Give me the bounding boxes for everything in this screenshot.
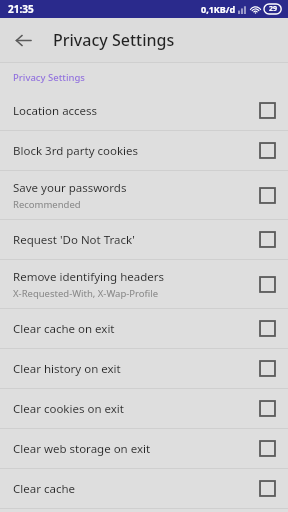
staticText: Remove identifying headers: [13, 269, 165, 285]
staticText: Clear history on exit: [13, 361, 121, 377]
button[interactable]: Remove identifying headers: [0, 260, 288, 308]
staticText: Request 'Do Not Track': [13, 232, 135, 248]
staticText: Clear cookies on exit: [13, 401, 124, 417]
staticText: Recommended: [13, 198, 81, 211]
staticText: Clear cache: [13, 481, 75, 497]
button[interactable]: Save your passwords: [0, 171, 288, 219]
staticText: Block 3rd party cookies: [13, 143, 139, 159]
staticText: X-Requested-With, X-Wap-Profile: [13, 287, 159, 300]
button[interactable]: Clear cache on exit: [0, 309, 288, 348]
button[interactable]: Clear cache: [0, 469, 288, 508]
staticText: Clear web storage on exit: [13, 441, 151, 457]
button[interactable]: Back: [10, 27, 36, 53]
staticText: 21:35: [8, 2, 34, 16]
staticText: Privacy Settings: [53, 29, 175, 51]
staticText: Save your passwords: [13, 180, 127, 196]
button[interactable]: Block 3rd party cookies: [0, 131, 288, 170]
button[interactable]: Request 'Do Not Track': [0, 220, 288, 259]
staticText: Clear cache on exit: [13, 321, 115, 337]
button[interactable]: Clear history on exit: [0, 349, 288, 388]
button[interactable]: Clear web storage on exit: [0, 429, 288, 468]
button[interactable]: Clear cookies on exit: [0, 389, 288, 428]
staticText: Location access: [13, 103, 98, 119]
staticText: Privacy Settings: [13, 71, 85, 84]
staticText: 0,1KB/d: [201, 3, 236, 15]
button[interactable]: Location access: [0, 91, 288, 130]
staticText: 29: [269, 4, 278, 14]
